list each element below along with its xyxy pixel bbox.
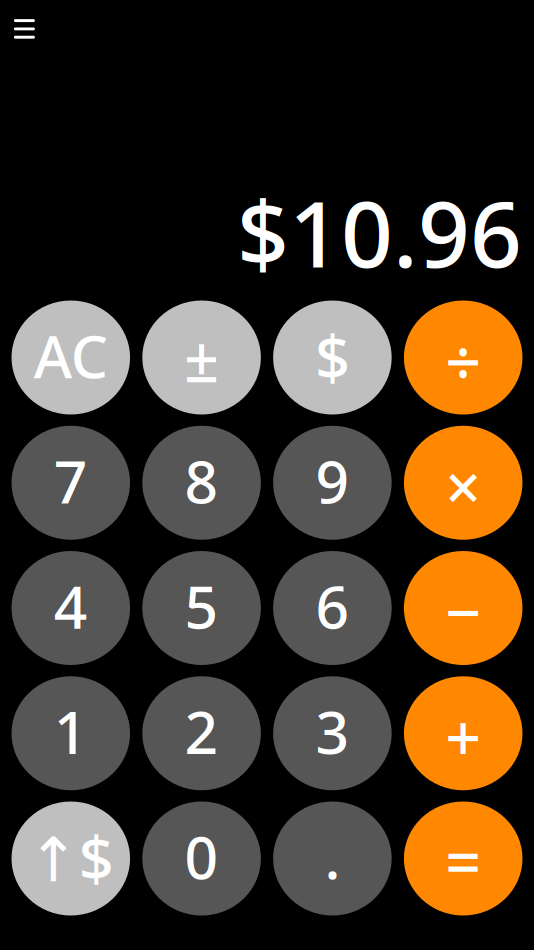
staticText: 6 bbox=[315, 567, 349, 645]
staticText: 0 bbox=[185, 817, 219, 895]
staticText: AC bbox=[34, 316, 108, 394]
button[interactable]: ÷ bbox=[404, 300, 522, 414]
button[interactable]: 3 bbox=[273, 676, 392, 790]
staticText: 2 bbox=[185, 692, 219, 770]
staticText: − bbox=[445, 570, 481, 653]
staticText: 1 bbox=[54, 692, 88, 770]
staticText: 9 bbox=[315, 442, 349, 520]
staticText: $ bbox=[315, 316, 350, 397]
staticText: ± bbox=[184, 318, 219, 399]
staticText: 4 bbox=[54, 567, 88, 645]
staticText: . bbox=[324, 817, 340, 895]
button[interactable]: 5 bbox=[142, 551, 261, 665]
staticText: 5 bbox=[185, 567, 219, 645]
button[interactable]: 6 bbox=[273, 551, 392, 665]
button[interactable]: ± bbox=[142, 300, 261, 414]
staticText: $10.96 bbox=[237, 172, 522, 292]
staticText: 7 bbox=[54, 442, 88, 520]
button[interactable]: . bbox=[273, 801, 392, 915]
button[interactable]: 1 bbox=[12, 676, 130, 790]
staticText: ↑$ bbox=[28, 817, 114, 898]
staticText: + bbox=[445, 695, 481, 778]
button[interactable]: AC bbox=[12, 300, 130, 414]
button[interactable]: Menu bbox=[0, 0, 51, 53]
button[interactable]: × bbox=[404, 426, 522, 540]
button[interactable]: = bbox=[404, 801, 522, 915]
button[interactable]: 7 bbox=[12, 426, 130, 540]
button[interactable]: − bbox=[404, 551, 522, 665]
staticText: = bbox=[445, 820, 481, 903]
button[interactable]: 9 bbox=[273, 426, 392, 540]
button[interactable]: 8 bbox=[142, 426, 261, 540]
staticText: 3 bbox=[315, 692, 349, 770]
staticText: 8 bbox=[185, 442, 219, 520]
button[interactable]: 0 bbox=[142, 801, 261, 915]
button[interactable]: ↑$ bbox=[12, 801, 130, 915]
button[interactable]: 2 bbox=[142, 676, 261, 790]
staticText: ÷ bbox=[445, 319, 481, 402]
button[interactable]: 4 bbox=[12, 551, 130, 665]
staticText: × bbox=[445, 444, 481, 528]
button[interactable]: $ bbox=[273, 300, 392, 414]
button[interactable]: + bbox=[404, 676, 522, 790]
